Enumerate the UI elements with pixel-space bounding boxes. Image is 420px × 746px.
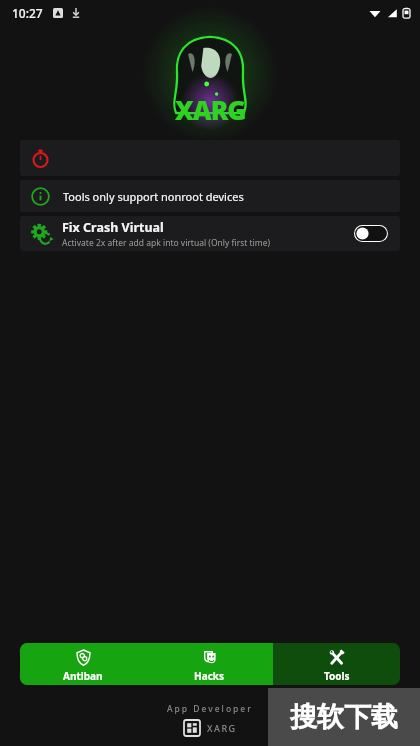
button[interactable]: Hacks: [146, 643, 273, 685]
staticText: 10:27: [12, 5, 43, 21]
button[interactable]: Fix Crash Virtual: [20, 216, 400, 251]
button[interactable]: Tools only support nonroot devices: [20, 180, 400, 212]
staticText: Antiban: [63, 669, 103, 683]
staticText: Hacks: [194, 669, 225, 683]
staticText: Activate 2x after add apk into virtual (…: [62, 237, 271, 249]
button[interactable]: Timer: [20, 140, 400, 176]
button[interactable]: Antiban: [20, 643, 146, 685]
staticText: XARG: [175, 92, 246, 127]
other: Timer: [31, 149, 50, 168]
staticText: 搜软下载: [290, 700, 398, 734]
staticText: XARG: [207, 722, 237, 734]
staticText: Tools only support nonroot devices: [63, 189, 244, 204]
staticText: Fix Crash Virtual: [62, 219, 164, 236]
button[interactable]: Fix Crash Virtual toggle: [354, 225, 388, 242]
staticText: App Developer: [167, 703, 253, 715]
staticText: Tools: [324, 669, 350, 683]
button[interactable]: Tools: [273, 643, 400, 685]
